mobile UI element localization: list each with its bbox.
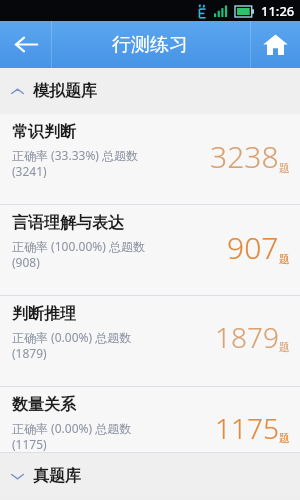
- staticText: 正确率 (0.00%) 总题数: [12, 420, 132, 436]
- staticText: 1175: [215, 409, 279, 447]
- staticText: 正确率 (33.33%) 总题数: [12, 147, 139, 163]
- staticText: 题: [279, 340, 290, 354]
- staticText: (1879): [12, 345, 47, 361]
- staticText: 题: [279, 161, 290, 175]
- button[interactable]: 真题库: [0, 453, 300, 499]
- staticText: 数量关系: [12, 395, 76, 415]
- button[interactable]: Home: [251, 21, 300, 68]
- staticText: 行测练习: [112, 33, 188, 57]
- staticText: (908): [12, 254, 40, 270]
- staticText: 3238: [210, 136, 279, 177]
- button[interactable]: 数量关系: [0, 387, 300, 452]
- button[interactable]: 模拟题库: [0, 68, 300, 114]
- staticText: 1879: [215, 318, 279, 356]
- staticText: 真题库: [33, 466, 81, 486]
- staticText: 正确率 (0.00%) 总题数: [12, 329, 132, 345]
- staticText: 正确率 (100.00%) 总题数: [12, 238, 145, 254]
- staticText: 模拟题库: [33, 81, 97, 101]
- button[interactable]: 判断推理: [0, 296, 300, 386]
- staticText: 言语理解与表达: [12, 213, 124, 233]
- staticText: (3241): [12, 163, 47, 179]
- button[interactable]: Back: [0, 21, 51, 68]
- button[interactable]: 言语理解与表达: [0, 205, 300, 295]
- staticText: 题: [279, 431, 290, 445]
- staticText: (1175): [12, 436, 47, 452]
- button[interactable]: 常识判断: [0, 114, 300, 204]
- staticText: 907: [227, 227, 279, 268]
- staticText: 11:26: [261, 2, 295, 20]
- staticText: 判断推理: [12, 304, 76, 324]
- staticText: 常识判断: [12, 122, 76, 142]
- staticText: 题: [279, 252, 290, 266]
